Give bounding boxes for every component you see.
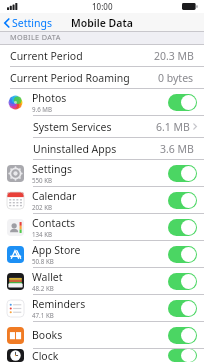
staticText: System Services	[33, 120, 112, 134]
staticText: Current Period	[10, 49, 83, 63]
button[interactable]: Contacts	[0, 214, 204, 240]
staticText: Calendar	[32, 189, 77, 203]
staticText: 202 KB	[32, 203, 53, 211]
button[interactable]: Reminders mobile data on	[168, 300, 197, 317]
button[interactable]: Uninstalled Apps	[0, 138, 204, 159]
button[interactable]: Photos	[0, 89, 204, 115]
button[interactable]: App Store mobile data on	[168, 246, 197, 263]
button[interactable]: Contacts mobile data on	[168, 219, 197, 236]
staticText: 550 KB	[32, 176, 53, 184]
button[interactable]: Back to Settings	[0, 14, 58, 32]
staticText: 0 bytes	[158, 71, 194, 85]
staticText: 9.6 MB	[32, 105, 52, 113]
staticText: Settings	[12, 16, 52, 30]
staticText: Uninstalled Apps	[33, 142, 117, 156]
staticText: App Store	[32, 243, 81, 257]
staticText: Books	[32, 328, 63, 342]
button[interactable]: Calendar mobile data on	[168, 192, 197, 209]
staticText: Photos	[32, 91, 67, 105]
staticText: Current Period Roaming	[10, 71, 130, 85]
button[interactable]: Calendar	[0, 187, 204, 213]
button[interactable]: Reminders	[0, 295, 204, 321]
button[interactable]: Current Period Roaming	[0, 67, 204, 88]
button[interactable]: Wallet	[0, 268, 204, 294]
button[interactable]: Wallet mobile data on	[168, 273, 197, 290]
staticText: 10:00	[92, 1, 113, 12]
staticText: Mobile Data	[71, 16, 133, 30]
staticText: 48.2 KB	[32, 284, 54, 292]
staticText: MOBILE DATA	[10, 32, 61, 42]
staticText: 47.1 KB	[32, 311, 54, 319]
button[interactable]: App Store	[0, 241, 204, 267]
button[interactable]: Books mobile data on	[168, 327, 197, 344]
button[interactable]: Clock mobile data on	[168, 349, 197, 362]
staticText: 20.3 MB	[154, 49, 194, 63]
button[interactable]: Current Period	[0, 45, 204, 66]
staticText: Settings	[32, 162, 72, 176]
button[interactable]: Clock	[0, 349, 204, 362]
button[interactable]: Books	[0, 322, 204, 348]
staticText: 134 KB	[32, 230, 53, 238]
button[interactable]: Settings mobile data on	[168, 165, 197, 182]
staticText: Contacts	[32, 216, 76, 230]
button[interactable]: Photos mobile data on	[168, 94, 197, 111]
staticText: 6.1 MB	[156, 120, 190, 134]
staticText: Clock	[32, 349, 59, 362]
staticText: Wallet	[32, 270, 63, 284]
staticText: Reminders	[32, 297, 86, 311]
button[interactable]: Settings	[0, 160, 204, 186]
staticText: 3.6 MB	[160, 142, 194, 156]
staticText: 50.8 KB	[32, 257, 54, 265]
button[interactable]: System Services	[0, 116, 204, 137]
